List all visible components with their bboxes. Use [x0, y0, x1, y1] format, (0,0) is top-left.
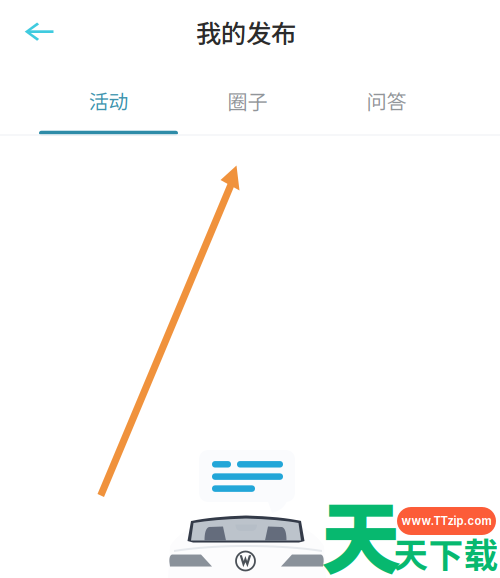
staticText: 我的发布 [196, 14, 296, 50]
button[interactable]: 问答 [317, 62, 456, 135]
button[interactable]: 活动 [39, 62, 178, 135]
staticText: 天下载 [393, 528, 498, 578]
staticText: 问答 [366, 86, 406, 115]
staticText: www.TTzip.com [401, 514, 491, 528]
staticText: 圈子 [227, 86, 267, 115]
staticText: 天 [321, 475, 401, 578]
staticText: 活动 [88, 86, 128, 115]
button[interactable]: 圈子 [178, 62, 317, 135]
button[interactable]: Back [12, 9, 67, 54]
